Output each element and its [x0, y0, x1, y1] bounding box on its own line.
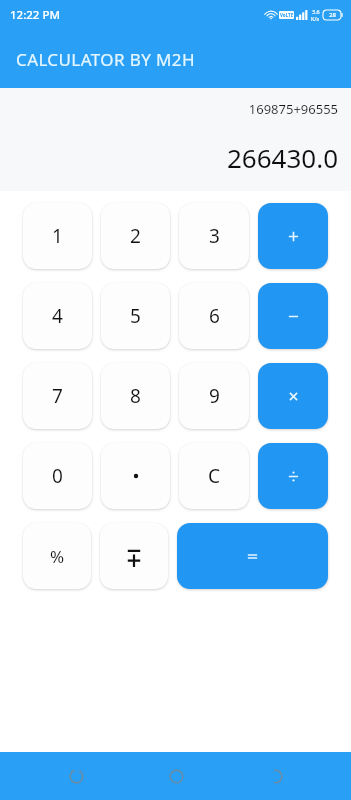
button[interactable]: % — [23, 523, 91, 589]
staticText: 4 — [52, 303, 63, 329]
staticText: 266430.0 — [226, 140, 338, 175]
staticText: 0 — [52, 463, 63, 489]
button[interactable] — [101, 443, 170, 509]
button[interactable]: Recent apps — [52, 752, 100, 800]
button[interactable]: Plus — [258, 203, 328, 269]
button[interactable]: Equals — [177, 523, 328, 589]
staticText: C — [208, 463, 221, 489]
staticText: 6 — [209, 303, 220, 329]
button[interactable]: Home — [152, 752, 200, 800]
staticText: CALCULATOR BY M2H — [16, 48, 195, 71]
staticText: K/s — [311, 15, 320, 22]
button[interactable]: Back — [251, 752, 299, 800]
button[interactable]: 3 — [179, 203, 249, 269]
staticText: 9 — [209, 383, 220, 409]
button[interactable]: 7 — [23, 363, 92, 429]
staticText: 12:22 PM — [10, 7, 61, 23]
staticText: VoLTE — [280, 12, 294, 18]
staticText: % — [50, 545, 65, 568]
button[interactable]: Plus minus sign toggle — [100, 523, 168, 589]
staticText: 5 — [130, 303, 141, 329]
button[interactable]: C — [179, 443, 249, 509]
button[interactable]: 8 — [101, 363, 170, 429]
button[interactable]: 6 — [179, 283, 249, 349]
button[interactable]: 9 — [179, 363, 249, 429]
button[interactable]: Minus — [258, 283, 328, 349]
staticText: 3.6 — [312, 8, 320, 15]
staticText: 1 — [52, 223, 63, 249]
button[interactable]: 1 — [23, 203, 92, 269]
staticText: 7 — [52, 383, 63, 409]
button[interactable]: 4 — [23, 283, 92, 349]
button[interactable]: Divide — [258, 443, 328, 509]
button[interactable]: 0 — [23, 443, 92, 509]
button[interactable]: 5 — [101, 283, 170, 349]
staticText: 2 — [130, 223, 141, 249]
staticText: 8 — [130, 383, 141, 409]
button[interactable]: Multiply — [258, 363, 328, 429]
staticText: 28 — [329, 11, 336, 19]
button[interactable]: 2 — [101, 203, 170, 269]
staticText: 169875+96555 — [248, 100, 338, 118]
staticText: 3 — [209, 223, 220, 249]
